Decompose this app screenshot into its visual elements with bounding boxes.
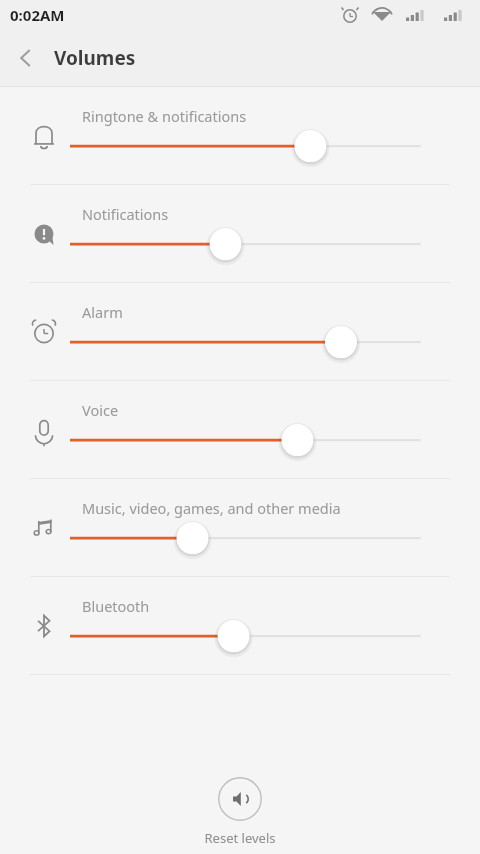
button[interactable]: Alarm [0,283,480,380]
button[interactable]: Voice [0,381,480,478]
staticText: Ringtone & notifications [82,106,247,126]
button[interactable]: Reset levels [196,777,284,847]
staticText: Volumes [54,45,136,71]
staticText: Reset levels [196,829,284,847]
staticText: Alarm [82,302,123,322]
staticText: Notifications [82,204,169,224]
staticText: Music, video, games, and other media [82,498,341,518]
button[interactable]: Ringtone & notifications [0,87,480,184]
staticText: Bluetooth [82,596,150,616]
staticText: Voice [82,400,119,420]
button[interactable]: Music, video, games, and other media [0,479,480,576]
button[interactable]: Bluetooth [0,577,480,674]
button[interactable]: Back [0,34,48,82]
button[interactable]: Notifications [0,185,480,282]
staticText: 0:02AM [10,5,65,25]
